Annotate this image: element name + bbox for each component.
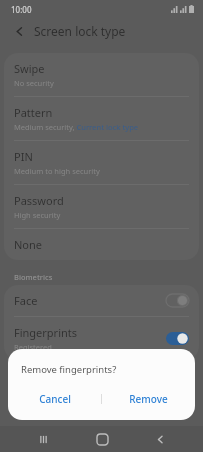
- button[interactable]: Remove: [102, 386, 195, 412]
- button[interactable]: Cancel: [8, 386, 101, 412]
- staticText: None: [14, 237, 43, 252]
- staticText: PIN: [14, 149, 33, 164]
- staticText: Remove fingerprints?: [21, 363, 117, 376]
- button[interactable]: Home: [86, 426, 118, 452]
- button[interactable]: PIN: [4, 141, 199, 184]
- button[interactable]: Back: [144, 426, 176, 452]
- button[interactable]: None: [4, 229, 199, 260]
- staticText: Remove: [129, 392, 168, 406]
- staticText: No security: [14, 78, 54, 88]
- staticText: Password: [14, 193, 64, 208]
- staticText: Swipe: [14, 61, 45, 76]
- staticText: Cancel: [39, 392, 71, 406]
- button[interactable]: Off: [166, 294, 189, 307]
- button[interactable]: Password: [4, 185, 199, 228]
- staticText: Medium to high security: [14, 166, 100, 176]
- button[interactable]: Face: [4, 285, 199, 316]
- staticText: Pattern: [14, 105, 53, 120]
- button[interactable]: On: [166, 332, 189, 345]
- button[interactable]: Pattern: [4, 97, 199, 140]
- staticText: Medium security, Current lock type: [14, 122, 139, 132]
- button[interactable]: Swipe: [4, 53, 199, 96]
- button[interactable]: Back: [9, 21, 29, 41]
- staticText: Biometrics: [14, 272, 53, 282]
- button[interactable]: Recents: [27, 426, 59, 452]
- staticText: Registered: [14, 342, 52, 352]
- staticText: Fingerprints: [14, 325, 78, 340]
- staticText: High security: [14, 210, 61, 220]
- staticText: Face: [14, 293, 38, 308]
- staticText: Screen lock type: [34, 23, 126, 39]
- button[interactable]: Fingerprints: [4, 317, 199, 360]
- staticText: 10:00: [11, 4, 32, 15]
